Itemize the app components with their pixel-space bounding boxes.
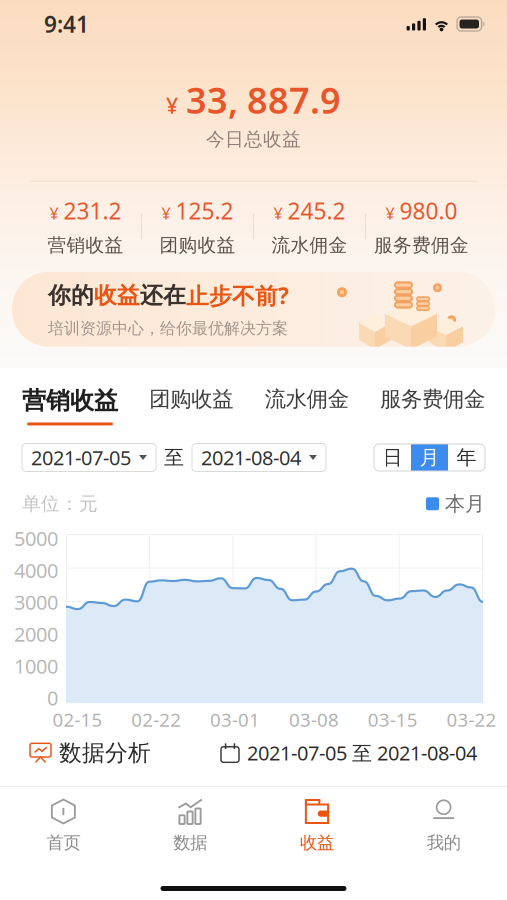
staticText: 4000 [14,557,58,583]
button[interactable]: ¥ [30,196,141,257]
button[interactable]: 月 [411,444,448,471]
button[interactable]: 2021-08-04 [192,443,326,471]
staticText: 33, 887.9 [186,76,341,124]
staticText: 至 [164,445,184,470]
staticText: 1000 [14,653,58,679]
staticText: 2021-07-05 至 2021-08-04 [247,740,477,766]
staticText: 服务费佣金 [374,234,469,257]
staticText: 今日总收益 [206,128,301,151]
button[interactable]: 数据 [127,799,254,853]
staticText: 你的 [48,281,94,309]
staticText: 团购收益 [149,386,233,412]
staticText: 月 [419,445,439,470]
button[interactable]: 我的 [380,799,507,853]
staticText: 团购收益 [159,234,235,257]
staticText: 服务费佣金 [380,386,485,412]
staticText: 营销收益 [47,234,123,257]
staticText: 收益 [94,281,140,309]
staticText: 数据分析 [59,739,151,767]
staticText: 2021-07-05 [31,444,131,471]
staticText: 245.2 [287,196,345,226]
staticText: 2021-08-04 [201,444,301,471]
staticText: 125.2 [175,196,233,226]
staticText: 03-08 [289,707,339,732]
staticText: ¥ [166,91,178,120]
staticText: 收益 [300,832,334,853]
button[interactable]: 日 [374,444,411,471]
staticText: 03-01 [210,707,260,732]
staticText: 03-15 [368,707,418,732]
staticText: 02-22 [131,707,181,732]
staticText: 单位：元 [22,492,98,515]
staticText: 首页 [46,832,80,853]
staticText: ¥ [161,203,170,224]
button[interactable]: 首页 [0,799,127,853]
staticText: 我的 [427,832,461,853]
staticText: 03-22 [447,707,497,732]
staticText: 本月 [445,491,485,516]
button[interactable]: 流水佣金 [265,386,349,412]
button[interactable]: 服务费佣金 [380,386,485,412]
staticText: 止步不前? [186,280,289,310]
button[interactable]: 团购收益 [149,386,233,412]
staticText: 年 [456,445,476,470]
button[interactable]: ¥ [366,196,477,257]
staticText: 5000 [14,525,58,552]
button[interactable]: 2021-07-05 [22,443,156,471]
button[interactable]: 2021-07-05 至 2021-08-04 [221,740,477,766]
staticText: 980.0 [399,196,457,226]
staticText: 日 [382,445,402,470]
button[interactable]: 你的 [12,272,495,347]
button[interactable]: ¥ [142,196,253,257]
button[interactable]: 数据分析 [30,739,151,767]
staticText: ¥ [273,203,282,224]
button[interactable]: ¥ [254,196,365,257]
staticText: ¥ [385,203,394,224]
staticText: 231.2 [63,196,121,226]
button[interactable]: 收益 [253,799,380,853]
staticText: 培训资源中心，给你最优解决方案 [48,318,288,338]
staticText: 还在 [140,281,186,309]
staticText: 营销收益 [22,386,118,415]
button[interactable]: 营销收益 [22,386,118,425]
staticText: 2000 [14,621,58,647]
staticText: 02-15 [52,707,102,732]
staticText: 数据 [173,832,207,853]
staticText: 流水佣金 [265,386,349,412]
button[interactable]: 年 [448,444,485,471]
staticText: 3000 [14,589,58,615]
staticText: 流水佣金 [271,234,347,257]
staticText: 9:41 [44,9,89,39]
staticText: ¥ [49,203,58,224]
staticText: 0 [47,684,58,711]
